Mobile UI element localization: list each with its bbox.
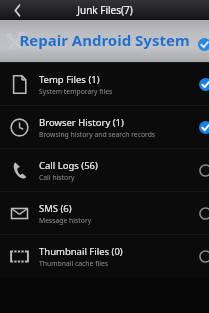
staticText: Log Files (3): [39, 30, 92, 43]
staticText: Call Logs (56): [39, 159, 98, 172]
button[interactable]: Log Files (3): [0, 20, 209, 62]
staticText: Repair Android System: [19, 30, 190, 50]
button[interactable]: Select SMS (6): [192, 200, 209, 226]
staticText: App log files: [39, 44, 79, 53]
button[interactable]: Selected Temp Files (1): [192, 71, 209, 97]
staticText: Browsing history and search records: [39, 130, 156, 139]
button[interactable]: Thumbnail Files (0): [0, 235, 209, 277]
button[interactable]: Browser History (1): [0, 106, 209, 148]
button[interactable]: Temp Files (1): [0, 63, 209, 105]
staticText: System temporary files: [39, 87, 113, 96]
staticText: Message history: [39, 216, 92, 225]
staticText: SMS (6): [39, 202, 72, 215]
button[interactable]: Selected Browser History (1): [192, 114, 209, 140]
button[interactable]: Back: [0, 0, 34, 20]
button[interactable]: SMS (6): [0, 192, 209, 234]
button[interactable]: Call Logs (56): [0, 149, 209, 191]
staticText: Temp Files (1): [39, 73, 100, 86]
staticText: Thumbnail cache files: [39, 259, 109, 268]
button[interactable]: Selected Log Files (3): [192, 28, 209, 54]
button[interactable]: Repair Android System: [0, 20, 209, 62]
staticText: Thumbnail Files (0): [39, 245, 123, 258]
staticText: Junk Files(7): [77, 3, 133, 17]
button[interactable]: Select Thumbnail Files (0): [192, 243, 209, 269]
staticText: Call history: [39, 173, 75, 182]
staticText: Browser History (1): [39, 116, 124, 129]
button[interactable]: Select Call Logs (56): [192, 157, 209, 183]
